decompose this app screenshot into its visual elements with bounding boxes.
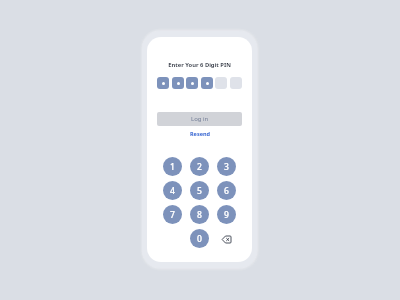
staticText: Enter Your 6 Digit PIN [147,61,252,69]
button[interactable]: 1 [163,157,182,176]
staticText: 8 [197,209,202,221]
other: PIN digit entered [157,77,169,89]
other: PIN digit empty [230,77,242,89]
other: PIN digit entered [172,77,184,89]
button[interactable]: 9 [217,205,236,224]
button[interactable]: 4 [163,181,182,200]
button[interactable]: 7 [163,205,182,224]
staticText: Log in [191,115,209,123]
staticText: 5 [197,185,202,197]
staticText: Resend [190,130,210,137]
other: PIN digit entered [186,77,198,89]
button[interactable]: 0 [190,229,209,248]
staticText: 3 [224,161,229,173]
button[interactable]: Log in [157,112,242,126]
button[interactable]: 3 [217,157,236,176]
other: PIN digit entered [201,77,213,89]
button[interactable]: 6 [217,181,236,200]
staticText: 2 [197,161,202,173]
staticText: 9 [224,209,229,221]
staticText: 0 [197,233,202,245]
staticText: 4 [170,185,175,197]
staticText: 1 [170,161,175,173]
other: PIN digit empty [215,77,227,89]
button[interactable]: 5 [190,181,209,200]
button[interactable]: 2 [190,157,209,176]
button[interactable]: 8 [190,205,209,224]
button[interactable]: Resend [186,128,214,139]
staticText: 6 [224,185,229,197]
staticText: 7 [170,209,175,221]
button[interactable]: Backspace [217,229,236,248]
